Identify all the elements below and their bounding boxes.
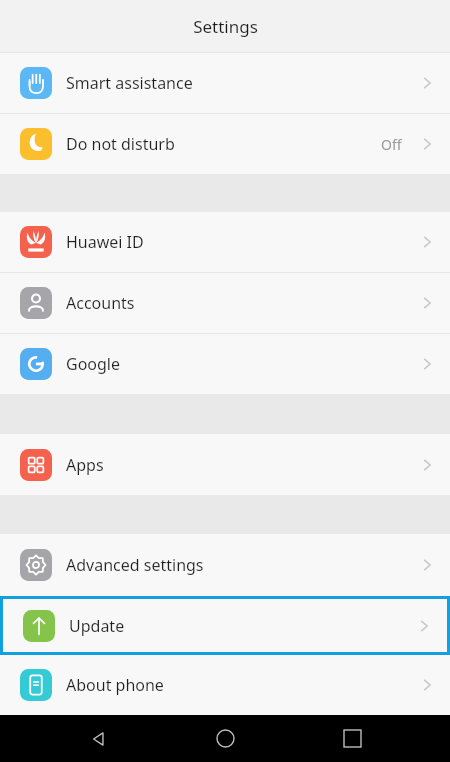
staticText: Apps [66,454,104,476]
staticText: Smart assistance [66,72,193,94]
button[interactable]: Do not disturb [0,114,450,174]
staticText: Settings [193,15,258,38]
staticText: Google [66,353,121,375]
staticText: Do not disturb [66,133,175,155]
button[interactable]: Apps [0,434,450,495]
button[interactable]: Advanced settings [0,534,450,596]
button[interactable]: Smart assistance [0,53,450,113]
button[interactable]: Accounts [0,273,450,333]
staticText: About phone [66,674,164,696]
staticText: Off [381,135,402,154]
button[interactable]: Google [0,334,450,394]
button[interactable]: Update [3,599,447,652]
button[interactable]: Home [197,715,253,762]
staticText: Advanced settings [66,554,204,576]
button[interactable]: Back [71,715,127,762]
button[interactable]: About phone [0,655,450,715]
staticText: Update [69,615,125,637]
button[interactable]: Huawei ID [0,212,450,272]
staticText: Huawei ID [66,231,144,253]
staticText: Accounts [66,292,135,314]
button[interactable]: Recent apps [324,715,380,762]
